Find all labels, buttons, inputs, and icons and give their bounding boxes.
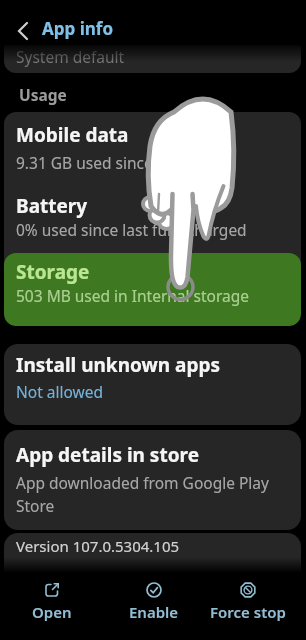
staticText: Force stop [210,602,286,622]
button[interactable] [8,14,40,46]
staticText: Mobile data [16,122,129,148]
staticText: Battery [16,193,88,219]
staticText: Enable [129,602,179,622]
staticText: Not allowed [16,381,104,402]
button[interactable]: Force stop [202,572,294,636]
button[interactable]: Storage [4,253,301,326]
button[interactable]: App details in store [4,430,301,530]
staticText: Usage [19,84,67,105]
staticText: 9.31 GB used since Dec 22 [16,152,206,173]
button[interactable]: Battery [4,192,301,253]
staticText: Storage [16,259,90,285]
button[interactable]: Install unknown apps [4,344,301,425]
button[interactable]: Open [6,572,98,636]
staticText: 503 MB used in Internal storage [16,285,250,306]
staticText: App downloaded from Google Play Store [16,472,282,517]
button[interactable]: Mobile data [4,112,301,192]
staticText: Version 107.0.5304.105 [16,536,180,556]
staticText: Open [32,602,72,622]
staticText: App info [42,17,114,40]
staticText: Install unknown apps [16,352,220,378]
button[interactable]: Enable [108,572,200,636]
staticText: System default [16,46,125,67]
staticText: App details in store [16,442,199,468]
button[interactable]: System default [4,45,301,73]
staticText: 0% used since last fully charged [16,219,247,240]
